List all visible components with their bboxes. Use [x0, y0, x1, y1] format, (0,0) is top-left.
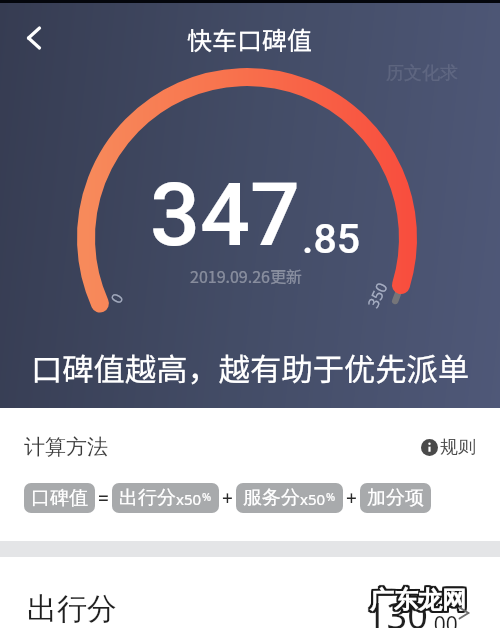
staticText: 广东龙网 — [369, 586, 465, 616]
staticText: 口碑值越高，越有助于优先派单 — [31, 345, 470, 390]
staticText: x50 — [300, 489, 326, 509]
button[interactable]: 口碑值 — [24, 483, 95, 513]
button[interactable]: Back — [11, 16, 55, 60]
staticText: 出行分 — [119, 486, 176, 510]
staticText: 广东龙网 — [370, 586, 466, 616]
staticText: 广东龙网 — [369, 587, 465, 617]
staticText: 347 — [150, 163, 301, 266]
staticText: % — [202, 489, 212, 504]
staticText: 广东龙网 — [369, 583, 465, 613]
button[interactable]: 加分项 — [360, 483, 431, 513]
button[interactable]: 出行分 — [0, 557, 500, 628]
staticText: 130 — [366, 591, 428, 628]
staticText: 广东龙网 — [368, 585, 464, 615]
staticText: 广东龙网 — [371, 587, 467, 617]
staticText: 广东龙网 — [372, 584, 468, 614]
button[interactable]: 出行分 — [112, 483, 219, 513]
staticText: 2019.09.26更新 — [190, 264, 302, 287]
staticText: 广东龙网 — [369, 584, 465, 614]
staticText: 0 — [106, 289, 127, 307]
staticText: = — [98, 485, 109, 511]
staticText: 广东龙网 — [368, 587, 464, 617]
staticText: 广东龙网 — [371, 584, 467, 614]
staticText: 计算方法 — [24, 434, 108, 460]
staticText: % — [326, 489, 336, 504]
staticText: .00 — [428, 610, 458, 628]
staticText: 广东龙网 — [368, 586, 464, 616]
staticText: 广东龙网 — [368, 583, 464, 613]
staticText: 广东龙网 — [370, 585, 466, 615]
staticText: .85 — [302, 215, 360, 263]
staticText: 广东龙网 — [372, 583, 468, 613]
staticText: 加分项 — [367, 486, 424, 510]
staticText: 广东龙网 — [372, 587, 468, 617]
staticText: 广东龙网 — [371, 583, 467, 613]
staticText: 快车口碑值 — [187, 21, 313, 57]
staticText: 广东龙网 — [370, 584, 466, 614]
staticText: 广东龙网 — [369, 585, 465, 615]
button[interactable]: 规则 — [421, 436, 476, 459]
staticText: x50 — [176, 489, 202, 509]
staticText: 广东龙网 — [368, 584, 464, 614]
staticText: + — [346, 485, 357, 511]
staticText: 历文化求 — [386, 62, 458, 85]
staticText: 规则 — [440, 436, 476, 459]
staticText: 广东龙网 — [370, 583, 466, 613]
staticText: + — [222, 485, 233, 511]
staticText: 出行分 — [27, 590, 117, 628]
staticText: 广东龙网 — [372, 585, 468, 615]
staticText: 广东龙网 — [372, 586, 468, 616]
staticText: 350 — [362, 279, 391, 311]
button[interactable]: 服务分 — [236, 483, 343, 513]
staticText: 广东龙网 — [371, 586, 467, 616]
staticText: 服务分 — [243, 486, 300, 510]
staticText: 广东龙网 — [371, 585, 467, 615]
staticText: 广东龙网 — [370, 587, 466, 617]
staticText: 口碑值 — [31, 486, 88, 510]
